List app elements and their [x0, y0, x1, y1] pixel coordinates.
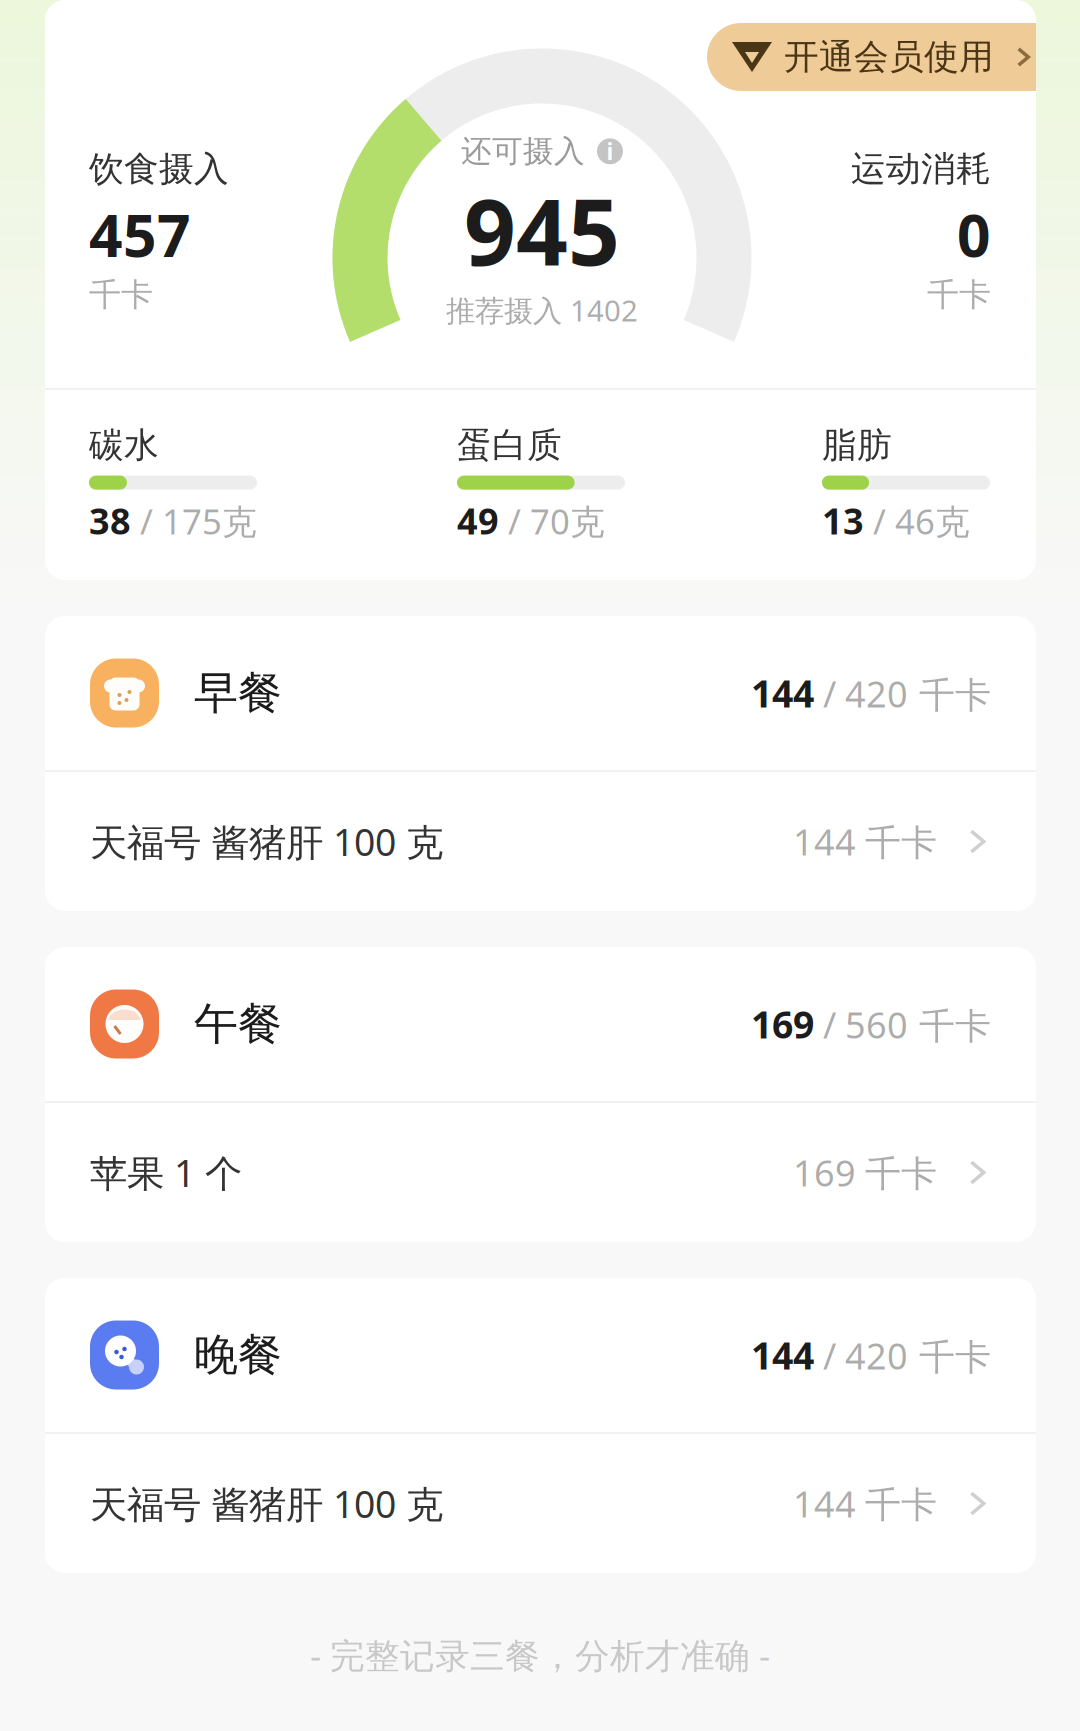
staticText: 饮食摄入 — [89, 148, 229, 190]
staticText: 144 — [751, 1330, 814, 1380]
staticText: / — [814, 670, 845, 717]
staticText: 144 千卡 — [793, 818, 937, 865]
staticText: 457 — [89, 195, 191, 273]
staticText: 苹果 1 个 — [90, 1148, 242, 1197]
staticText: / — [499, 498, 530, 544]
staticText: 开通会员使用 — [784, 36, 994, 78]
staticText: 千卡 — [908, 1004, 991, 1049]
staticText: 70克 — [530, 498, 605, 544]
staticText: 还可摄入 — [461, 132, 585, 170]
staticText: 天福号 酱猪肝 100 克 — [90, 1479, 443, 1528]
staticText: i — [606, 136, 613, 166]
staticText: 38 — [89, 497, 131, 544]
staticText: 千卡 — [89, 275, 153, 314]
button[interactable]: 早餐 — [45, 616, 1036, 770]
staticText: 运动消耗 — [851, 148, 991, 190]
staticText: 千卡 — [927, 275, 991, 314]
staticText: 推荐摄入 1402 — [446, 291, 638, 330]
staticText: 早餐 — [194, 666, 282, 720]
staticText: 169 千卡 — [793, 1149, 937, 1196]
staticText: 169 — [751, 999, 814, 1049]
staticText: 蛋白质 — [457, 424, 562, 467]
staticText: 420 — [845, 670, 908, 717]
staticText: / — [131, 498, 162, 544]
staticText: 175克 — [162, 498, 257, 544]
staticText: 46克 — [895, 498, 970, 544]
staticText: 945 — [464, 170, 620, 291]
staticText: 午餐 — [194, 997, 282, 1051]
staticText: 420 — [845, 1332, 908, 1379]
staticText: 碳水 — [89, 424, 159, 467]
staticText: / — [864, 498, 895, 544]
staticText: 千卡 — [908, 1335, 991, 1380]
staticText: - 完整记录三餐，分析才准确 - — [310, 1632, 770, 1678]
staticText: 晚餐 — [194, 1328, 282, 1382]
button[interactable]: 午餐 — [45, 947, 1036, 1101]
staticText: / — [814, 1332, 845, 1379]
staticText: 13 — [822, 497, 864, 544]
staticText: 49 — [457, 497, 499, 544]
button[interactable]: 晚餐 — [45, 1278, 1036, 1432]
staticText: 144 — [751, 668, 814, 718]
staticText: 千卡 — [908, 673, 991, 718]
staticText: 0 — [957, 195, 991, 273]
button[interactable]: 天福号 酱猪肝 100 克 — [45, 1434, 1036, 1573]
staticText: / — [814, 1001, 845, 1048]
staticText: 144 千卡 — [793, 1480, 937, 1527]
button[interactable]: 开通会员使用 — [707, 23, 1036, 91]
staticText: 脂肪 — [822, 424, 892, 467]
button[interactable]: 天福号 酱猪肝 100 克 — [45, 772, 1036, 911]
staticText: 560 — [845, 1001, 908, 1048]
staticText: 天福号 酱猪肝 100 克 — [90, 817, 443, 866]
button[interactable]: 苹果 1 个 — [45, 1103, 1036, 1242]
